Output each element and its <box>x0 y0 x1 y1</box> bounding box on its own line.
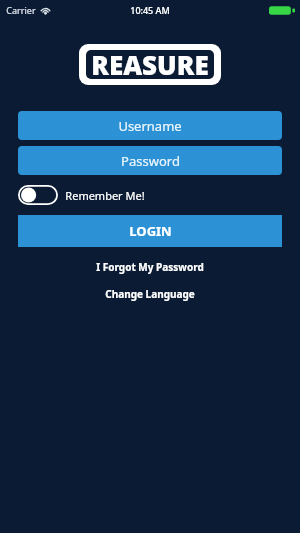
button[interactable]: LOGIN <box>18 215 282 247</box>
button[interactable]: Username <box>18 111 282 140</box>
button[interactable]: Change Language <box>0 286 300 302</box>
staticText: 10:45 AM <box>130 4 170 16</box>
button[interactable]: Password <box>18 146 282 175</box>
staticText: LOGIN <box>129 222 172 240</box>
button[interactable]: I Forgot My Password <box>0 259 300 275</box>
staticText: Remember Me! <box>65 188 145 203</box>
staticText: Carrier <box>6 4 36 16</box>
other: Remember Me toggle <box>18 185 58 205</box>
staticText: Username <box>118 117 182 135</box>
staticText: Password <box>121 152 180 170</box>
button[interactable]: Remember Me toggle <box>18 183 145 207</box>
staticText: Change Language <box>105 287 195 301</box>
staticText: I Forgot My Password <box>96 260 204 274</box>
staticText: REASURE <box>91 47 209 82</box>
